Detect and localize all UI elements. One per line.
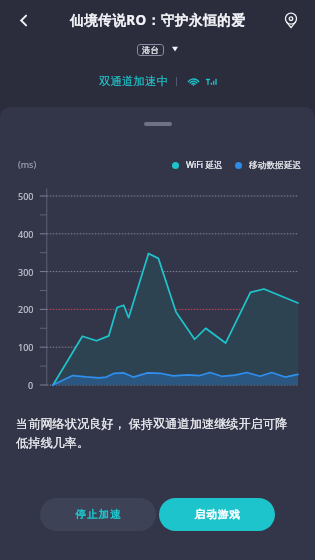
staticText: 500 [18, 190, 34, 202]
staticText: 100 [18, 341, 34, 353]
button[interactable]: Location [280, 9, 302, 31]
staticText: WiFi 延迟 [186, 159, 223, 171]
button[interactable]: 启动游戏 [159, 498, 275, 531]
staticText: 400 [18, 228, 34, 240]
staticText: (ms) [18, 158, 37, 170]
button[interactable]: 港台 [137, 44, 164, 56]
staticText: 启动游戏 [194, 508, 240, 521]
staticText: 300 [18, 266, 34, 278]
staticText: 0 [28, 379, 34, 391]
staticText: 停止加速 [75, 508, 121, 521]
staticText: 仙境传说RO：守护永恒的爱 [70, 11, 246, 29]
button[interactable]: Back [12, 9, 34, 31]
staticText: 港台 [142, 45, 159, 56]
staticText: 移动数据延迟 [249, 160, 302, 171]
staticText: 200 [18, 303, 34, 315]
staticText: 双通道加速中 [99, 74, 168, 88]
button[interactable]: 停止加速 [40, 498, 156, 531]
staticText: 当前网络状况良好， 保持双通道加速继续开启可降 低掉线几率。 [16, 415, 288, 451]
